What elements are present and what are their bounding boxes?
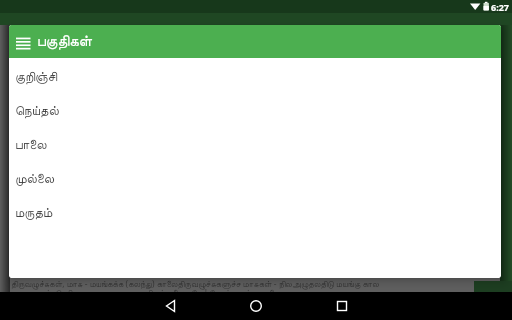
button[interactable] bbox=[328, 292, 356, 320]
button[interactable]: முல்லை bbox=[9, 162, 501, 196]
button[interactable]: பாலை bbox=[9, 128, 501, 162]
staticText: குறிஞ்சி bbox=[15, 71, 58, 84]
button[interactable]: பகுதிகள் bbox=[9, 25, 501, 58]
button[interactable]: குறிஞ்சி bbox=[9, 60, 501, 94]
button[interactable] bbox=[156, 292, 184, 320]
staticText: பாலை bbox=[15, 139, 47, 152]
staticText: நெய்தல் bbox=[15, 105, 59, 118]
button[interactable] bbox=[242, 292, 270, 320]
button[interactable]: நெய்தல் bbox=[9, 94, 501, 128]
staticText: திருவழுச்சுகள், மாசு - மயங்கக்க (கலந்து)… bbox=[11, 278, 379, 290]
staticText: முல்லை bbox=[15, 173, 55, 186]
staticText: மருதம் bbox=[15, 207, 53, 220]
staticText: 6:27 bbox=[491, 1, 509, 13]
staticText: பகுதிகள் bbox=[37, 34, 93, 49]
staticText: உளய மரல், பெரிய எளவமை மனளக சிவம் தலைவனே!… bbox=[11, 287, 281, 299]
button[interactable]: மருதம் bbox=[9, 196, 501, 230]
